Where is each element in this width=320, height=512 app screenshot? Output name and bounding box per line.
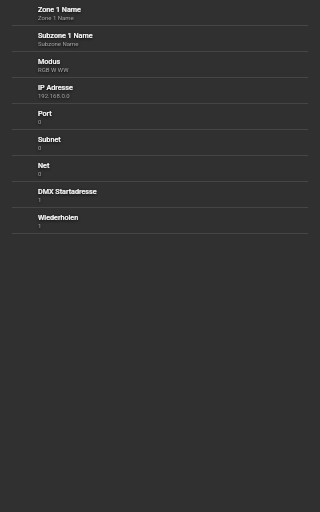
button[interactable]: DMX Startadresse bbox=[0, 182, 320, 208]
button[interactable]: Port bbox=[0, 104, 320, 130]
staticText: 192.168.0.0 bbox=[38, 92, 70, 99]
staticText: Port bbox=[38, 109, 52, 117]
staticText: Subzone Name bbox=[38, 40, 79, 47]
staticText: IP Adresse bbox=[38, 83, 73, 91]
staticText: Zone 1 Name bbox=[38, 5, 81, 13]
button[interactable]: Zone 1 Name bbox=[0, 0, 320, 26]
button[interactable]: Wiederholen bbox=[0, 208, 320, 234]
button[interactable]: Modus bbox=[0, 52, 320, 78]
staticText: 1 bbox=[38, 196, 42, 203]
button[interactable]: Net bbox=[0, 156, 320, 182]
staticText: Zone 1 Name bbox=[38, 14, 74, 21]
button[interactable]: Subnet bbox=[0, 130, 320, 156]
staticText: DMX Startadresse bbox=[38, 187, 97, 195]
staticText: Subzone 1 Name bbox=[38, 31, 93, 39]
staticText: Net bbox=[38, 161, 50, 169]
staticText: 1 bbox=[38, 222, 42, 229]
staticText: 0 bbox=[38, 144, 42, 151]
staticText: Wiederholen bbox=[38, 213, 79, 221]
staticText: 0 bbox=[38, 170, 42, 177]
button[interactable]: IP Adresse bbox=[0, 78, 320, 104]
staticText: 0 bbox=[38, 118, 42, 125]
staticText: Subnet bbox=[38, 135, 61, 143]
staticText: RGB W WW bbox=[38, 66, 69, 73]
staticText: Modus bbox=[38, 57, 61, 65]
button[interactable]: Subzone 1 Name bbox=[0, 26, 320, 52]
